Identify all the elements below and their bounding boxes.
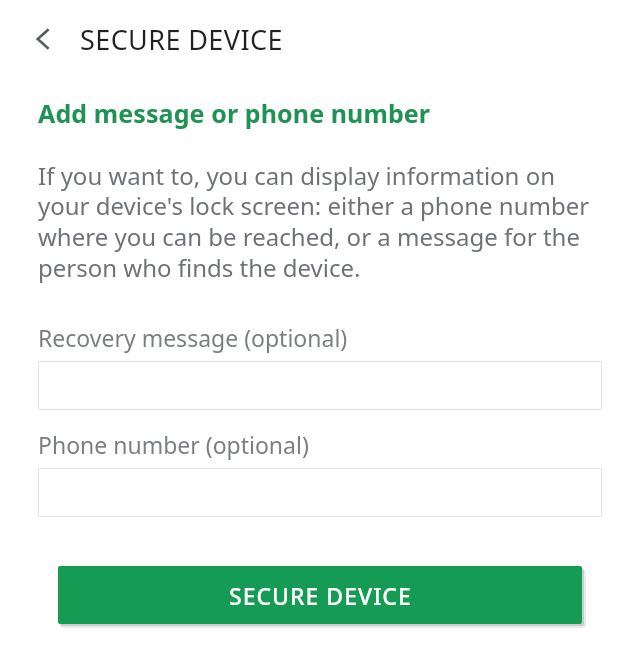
staticText: SECURE DEVICE xyxy=(80,21,283,58)
button[interactable]: SECURE DEVICE xyxy=(58,566,582,624)
staticText: SECURE DEVICE xyxy=(229,580,412,611)
staticText: Phone number (optional) xyxy=(38,429,309,460)
staticText: Recovery message (optional) xyxy=(38,322,348,353)
button[interactable]: Back xyxy=(22,16,68,62)
button[interactable] xyxy=(38,361,602,410)
staticText: Add message or phone number xyxy=(38,96,431,130)
button[interactable] xyxy=(38,468,602,517)
staticText: If you want to, you can display informat… xyxy=(38,159,602,284)
